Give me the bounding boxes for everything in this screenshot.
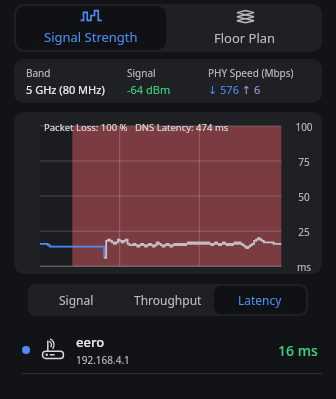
staticText: 75 [298, 155, 310, 169]
button[interactable]: Latency [214, 286, 306, 314]
staticText: ms [297, 260, 312, 274]
staticText: ↓ 576 [208, 82, 239, 97]
staticText: Floor Plan [214, 29, 276, 47]
staticText: 25 [298, 225, 310, 239]
staticText: Packet Loss: 100 % DNS Latency: 474 ms [44, 121, 229, 134]
staticText: -64 dBm [127, 82, 171, 97]
staticText: 192.168.4.1 [76, 353, 130, 367]
staticText: Signal [127, 66, 156, 80]
other: Router [40, 338, 66, 362]
button[interactable]: Signal [30, 286, 122, 314]
button[interactable]: Band [14, 59, 322, 103]
staticText: 16 ms [278, 341, 318, 360]
staticText: 5 GHz (80 MHz) [26, 82, 105, 97]
button[interactable]: Signal Strength [16, 6, 166, 50]
staticText: PHY Speed (Mbps) [208, 66, 294, 80]
staticText: 50 [298, 190, 310, 204]
button[interactable]: Throughput [122, 286, 214, 314]
staticText: Signal [59, 292, 94, 308]
button[interactable]: Router [0, 327, 336, 373]
staticText: Signal Strength [44, 28, 138, 46]
staticText: Throughput [134, 292, 202, 308]
staticText: eero [76, 333, 105, 351]
staticText: Band [26, 66, 51, 80]
staticText: ↑ 6 [239, 82, 261, 97]
button[interactable]: Floor Plan [168, 4, 322, 52]
staticText: 100 [295, 120, 313, 134]
staticText: Latency [238, 292, 282, 308]
